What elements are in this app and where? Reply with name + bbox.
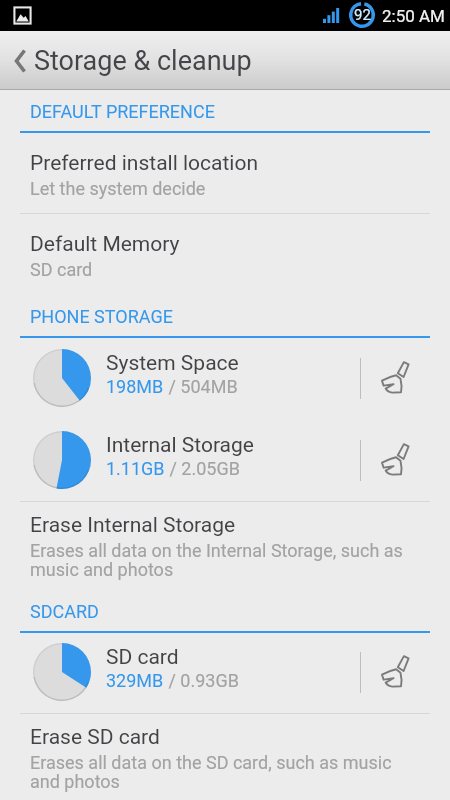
- button[interactable]: Storage & cleanup: [0, 31, 450, 90]
- button[interactable]: Erase SD card: [0, 725, 450, 793]
- staticText: Erases all data on the SD card, such as …: [30, 752, 392, 793]
- button[interactable]: System Space: [0, 337, 450, 419]
- staticText: System Space: [106, 351, 239, 376]
- staticText: 329MB: [106, 670, 164, 691]
- button[interactable]: Erase Internal Storage: [0, 513, 450, 581]
- staticText: 2:50 AM: [382, 6, 445, 26]
- staticText: Erase Internal Storage: [30, 513, 236, 538]
- staticText: Erases all data on the Internal Storage,…: [30, 540, 403, 581]
- staticText: SD card: [106, 645, 179, 670]
- staticText: SD card: [30, 259, 93, 280]
- staticText: Preferred install location: [30, 151, 259, 176]
- button[interactable]: SD card: [0, 631, 450, 713]
- button[interactable]: Internal Storage: [0, 419, 450, 501]
- staticText: SDCARD: [30, 601, 99, 622]
- button[interactable]: Clean SD card: [371, 649, 417, 695]
- staticText: / 2.05GB: [165, 458, 240, 479]
- button[interactable]: Clean Internal Storage: [371, 437, 417, 483]
- staticText: / 504MB: [164, 376, 238, 397]
- staticText: Let the system decide: [30, 178, 206, 199]
- staticText: / 0.93GB: [164, 670, 239, 691]
- staticText: 1.11GB: [106, 458, 165, 479]
- staticText: 92: [354, 6, 371, 24]
- staticText: Default Memory: [30, 232, 180, 257]
- staticText: Storage & cleanup: [34, 45, 252, 77]
- staticText: 198MB: [106, 376, 164, 397]
- button[interactable]: Preferred install location: [0, 151, 450, 199]
- staticText: PHONE STORAGE: [30, 306, 173, 327]
- staticText: Erase SD card: [30, 725, 160, 750]
- staticText: DEFAULT PREFERENCE: [30, 101, 215, 122]
- button[interactable]: Clean System Space: [371, 355, 417, 401]
- staticText: Internal Storage: [106, 433, 254, 458]
- button[interactable]: Default Memory: [0, 232, 450, 280]
